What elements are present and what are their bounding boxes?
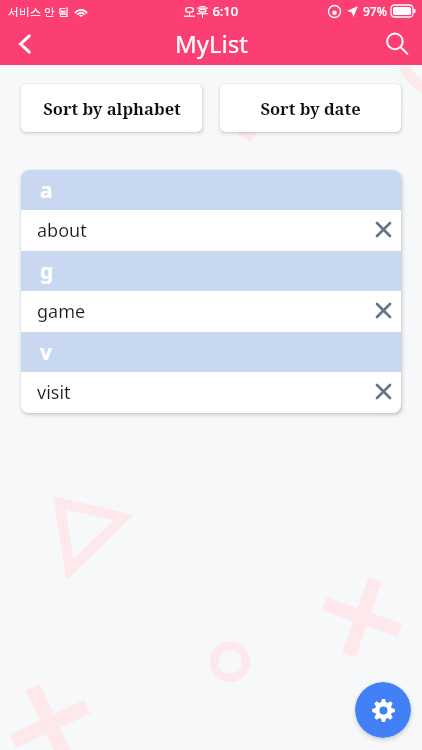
staticText: 97%: [363, 3, 387, 19]
button[interactable]: visit: [21, 372, 401, 413]
button[interactable]: Search: [372, 22, 422, 65]
staticText: about: [37, 218, 361, 243]
staticText: g: [40, 257, 54, 286]
button[interactable]: about: [21, 210, 401, 251]
staticText: game: [37, 299, 361, 324]
button[interactable]: Delete about: [361, 211, 401, 251]
button[interactable]: Settings: [355, 682, 411, 738]
staticText: 서비스 안 됨: [8, 4, 69, 19]
button[interactable]: Delete visit: [361, 373, 401, 413]
button[interactable]: Sort by date: [220, 84, 401, 132]
button[interactable]: game: [21, 291, 401, 332]
staticText: visit: [37, 380, 361, 405]
button[interactable]: Sort by alphabet: [21, 84, 202, 132]
button[interactable]: Back: [0, 22, 50, 65]
staticText: 오후 6:10: [183, 2, 239, 20]
staticText: MyList: [175, 27, 248, 60]
staticText: a: [40, 176, 53, 205]
button[interactable]: Delete game: [361, 292, 401, 332]
staticText: v: [40, 338, 52, 367]
staticText: Sort by alphabet: [43, 97, 181, 119]
staticText: Sort by date: [260, 97, 361, 119]
